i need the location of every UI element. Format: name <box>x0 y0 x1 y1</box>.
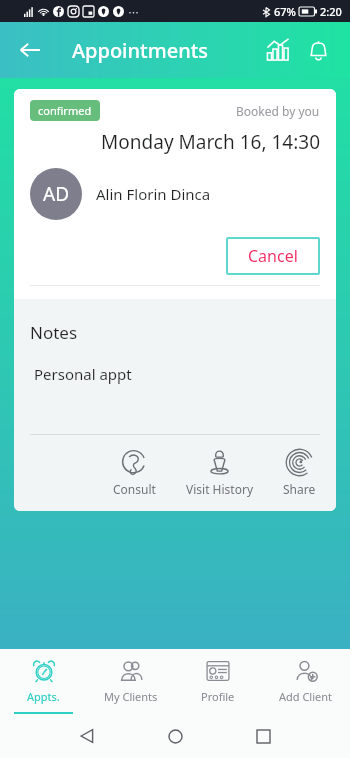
button[interactable]: Appts. <box>0 649 87 712</box>
staticText: confirmed <box>38 103 92 118</box>
button[interactable]: Visit History <box>182 449 257 497</box>
button[interactable]: Share <box>279 449 320 497</box>
staticText: My Clients <box>104 689 158 704</box>
button[interactable]: Cancel <box>226 237 320 275</box>
button[interactable]: Back <box>8 28 52 72</box>
staticText: AD <box>43 181 70 207</box>
staticText: Monday March 16, 14:30 <box>30 129 320 155</box>
staticText: Alin Florin Dinca <box>96 184 211 204</box>
staticText: Personal appt <box>34 364 132 384</box>
staticText: Booked by you <box>236 103 320 119</box>
button[interactable]: Consult <box>109 449 160 497</box>
button[interactable]: Home <box>153 714 197 758</box>
button[interactable]: My Clients <box>87 649 174 712</box>
staticText: Profile <box>201 689 235 704</box>
staticText: Notes <box>30 321 78 344</box>
staticText: Consult <box>113 481 156 497</box>
staticText: Add Client <box>279 689 333 704</box>
button[interactable]: Statistics <box>258 30 298 70</box>
staticText: Share <box>283 481 316 497</box>
staticText: 67% <box>274 4 296 19</box>
button[interactable]: Add Client <box>262 649 350 712</box>
button[interactable]: Notifications <box>298 30 338 70</box>
button[interactable]: Recents <box>241 714 285 758</box>
staticText: Appts. <box>27 689 60 704</box>
staticText: Visit History <box>186 481 253 497</box>
button[interactable]: Back <box>65 714 109 758</box>
button[interactable]: Profile <box>174 649 262 712</box>
staticText: 2:20 <box>320 4 342 19</box>
staticText: Cancel <box>248 245 298 267</box>
staticText: Appointments <box>72 37 209 64</box>
button[interactable]: confirmed <box>30 100 100 121</box>
